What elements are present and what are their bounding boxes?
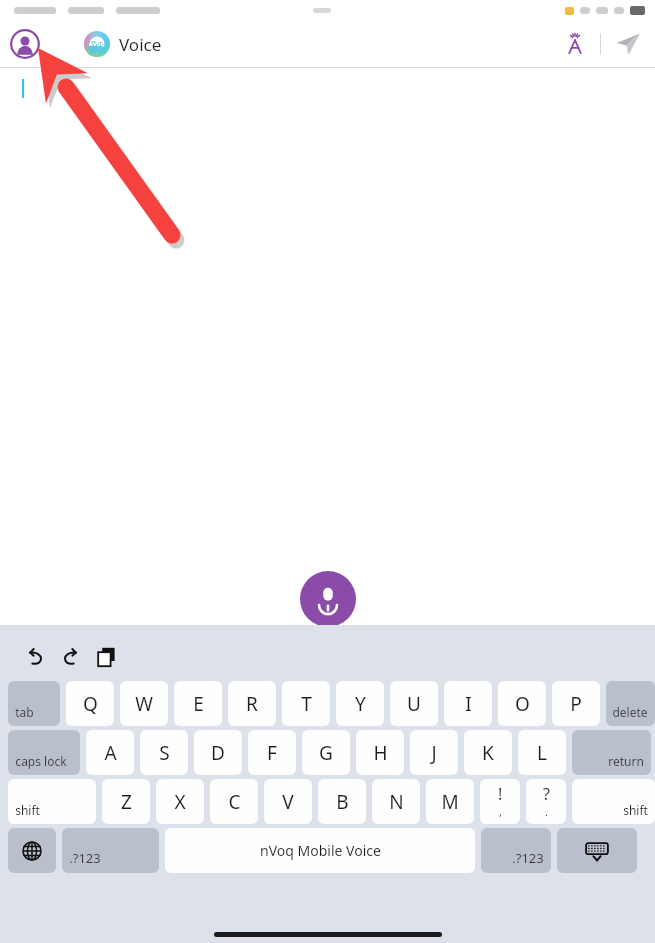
button[interactable]: B [318, 779, 366, 824]
staticText: D [211, 740, 225, 766]
staticText: M [441, 789, 459, 815]
button[interactable]: P [552, 681, 600, 726]
button[interactable]: H [356, 730, 404, 775]
button[interactable]: Redo [54, 640, 88, 674]
staticText: H [373, 740, 388, 766]
button[interactable]: U [390, 681, 438, 726]
staticText: Y [355, 691, 366, 717]
staticText: J [431, 740, 437, 766]
button[interactable]: X [156, 779, 204, 824]
button[interactable]: Account [8, 27, 42, 61]
staticText: Q [83, 691, 98, 717]
staticText: V [282, 789, 294, 815]
button[interactable]: N [372, 779, 420, 824]
staticText: F [267, 740, 277, 766]
button[interactable]: M [426, 779, 474, 824]
button[interactable]: Undo [18, 640, 52, 674]
staticText: O [515, 691, 530, 717]
button[interactable]: tab [8, 681, 60, 726]
button[interactable]: A [86, 730, 134, 775]
button[interactable]: Z [102, 779, 150, 824]
button[interactable]: R [228, 681, 276, 726]
staticText: A [104, 740, 117, 766]
button[interactable]: W [120, 681, 168, 726]
button[interactable]: V [264, 779, 312, 824]
button[interactable]: shift [8, 779, 96, 824]
button[interactable]: ! [480, 779, 520, 824]
staticText: nVoq Mobile Voice [260, 841, 381, 860]
staticText: shift [623, 802, 648, 818]
staticText: ? [543, 783, 550, 805]
button[interactable]: .?123 [481, 828, 551, 873]
staticText: X [174, 789, 186, 815]
button[interactable]: return [572, 730, 651, 775]
staticText: .?123 [69, 849, 101, 867]
staticText: delete [612, 704, 648, 720]
button[interactable]: shift [572, 779, 655, 824]
button[interactable]: O [498, 681, 546, 726]
staticText: Z [121, 789, 132, 815]
staticText: B [336, 789, 349, 815]
staticText: R [246, 691, 258, 717]
staticText: I [465, 691, 472, 717]
button[interactable]: Paste [90, 640, 124, 674]
staticText: nVoq [89, 40, 105, 48]
button[interactable]: E [174, 681, 222, 726]
button[interactable]: F [248, 730, 296, 775]
button[interactable]: S [140, 730, 188, 775]
button[interactable]: D [194, 730, 242, 775]
button[interactable]: C [210, 779, 258, 824]
staticText: return [608, 753, 644, 769]
staticText: shift [15, 802, 40, 818]
staticText: E [193, 691, 204, 717]
button[interactable]: .?123 [62, 828, 159, 873]
button[interactable]: J [410, 730, 458, 775]
button[interactable]: AI formatting [560, 29, 590, 59]
button[interactable]: Record voice [300, 571, 356, 627]
staticText: W [135, 691, 153, 717]
staticText: .?123 [512, 849, 544, 867]
button[interactable]: K [464, 730, 512, 775]
button[interactable]: T [282, 681, 330, 726]
button[interactable]: caps lock [8, 730, 80, 775]
staticText: T [301, 691, 312, 717]
staticText: U [407, 691, 421, 717]
staticText: P [570, 691, 582, 717]
button[interactable]: I [444, 681, 492, 726]
button[interactable]: Y [336, 681, 384, 726]
staticText: Voice [119, 33, 162, 56]
button[interactable]: L [518, 730, 566, 775]
staticText: ! [498, 783, 503, 805]
staticText: , [499, 804, 502, 819]
button[interactable]: Hide keyboard [557, 828, 637, 873]
button[interactable]: nVoq Mobile Voice [165, 828, 475, 873]
staticText: N [389, 789, 404, 815]
staticText: S [159, 740, 170, 766]
staticText: L [537, 740, 547, 766]
button[interactable]: delete [606, 681, 655, 726]
button[interactable]: Q [66, 681, 114, 726]
staticText: G [319, 740, 333, 766]
staticText: caps lock [15, 753, 67, 769]
button[interactable]: Switch keyboard language [8, 828, 56, 873]
staticText: C [228, 789, 241, 815]
staticText: tab [15, 704, 34, 720]
button[interactable]: Send [613, 29, 643, 59]
button[interactable]: ? [526, 779, 566, 824]
staticText: . [545, 804, 548, 819]
staticText: K [482, 740, 494, 766]
button[interactable]: G [302, 730, 350, 775]
